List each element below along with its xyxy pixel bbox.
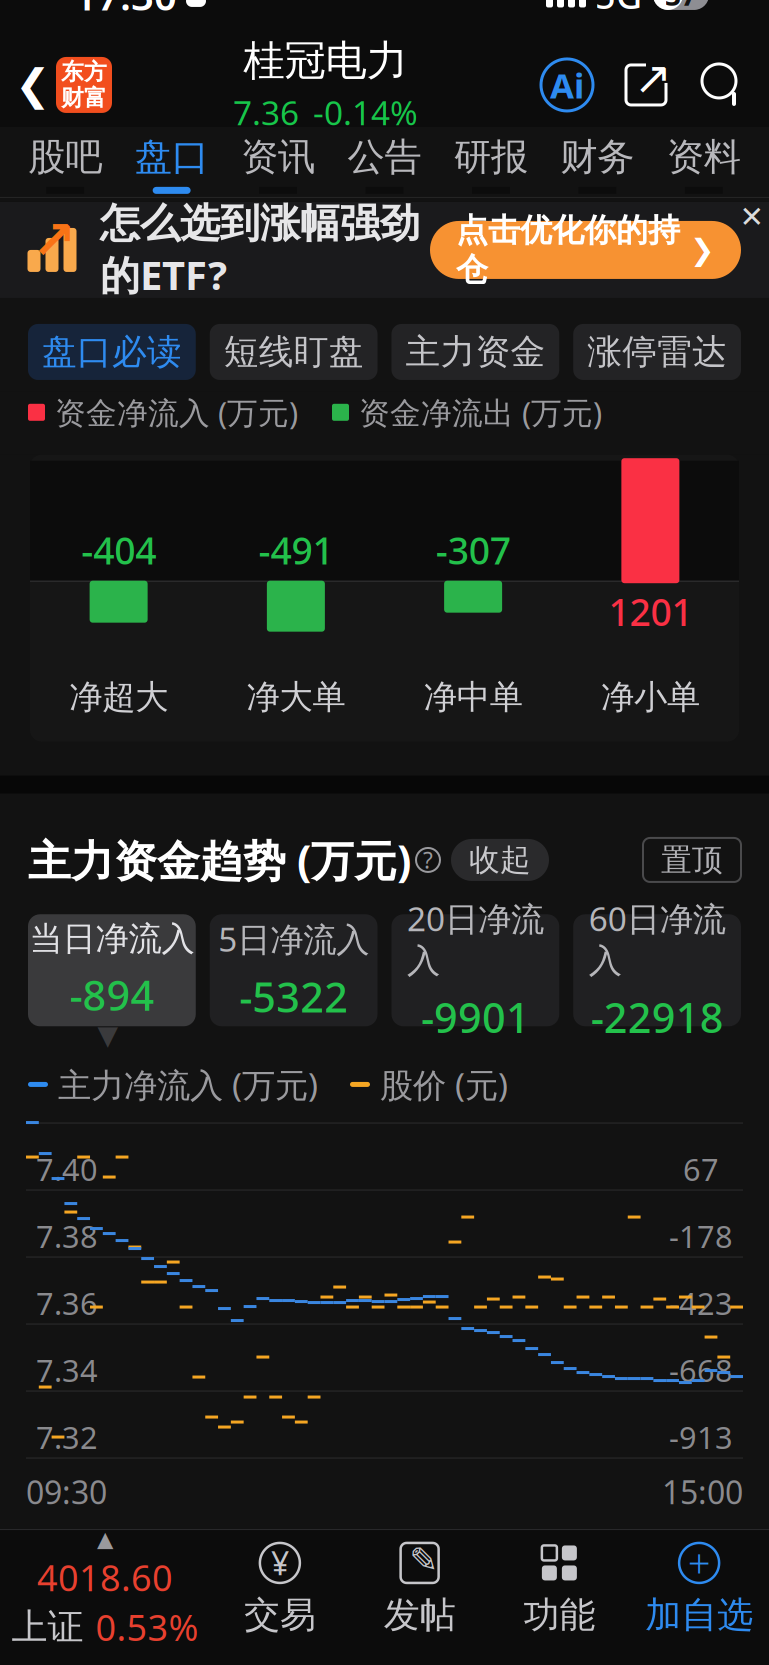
staticText: 财务 <box>560 134 634 180</box>
staticText: -9901 <box>421 989 530 1044</box>
staticText: -178 <box>669 1216 733 1256</box>
button[interactable]: + <box>629 1530 769 1648</box>
staticText: 置顶 <box>661 841 723 879</box>
staticText: ? <box>423 845 433 875</box>
staticText: 点击优化你的持仓 <box>456 211 680 289</box>
staticText: 涨停雷达 <box>587 331 727 373</box>
button[interactable]: 功能 <box>489 1530 629 1648</box>
button[interactable]: 短线盯盘 <box>210 324 378 380</box>
staticText: 5G <box>595 0 642 19</box>
staticText: 净大单 <box>246 677 345 718</box>
staticText: 37 <box>665 0 697 14</box>
staticText: 发帖 <box>384 1593 456 1637</box>
button[interactable]: AI 助手 <box>539 57 595 113</box>
button[interactable]: 返回 <box>10 53 56 117</box>
staticText: 7.32 <box>36 1417 98 1457</box>
button[interactable]: 涨停雷达 <box>573 324 741 380</box>
staticText: 资讯 <box>241 134 315 180</box>
staticText: 7.36 <box>233 90 299 134</box>
staticText: 桂冠电力 <box>243 35 407 86</box>
staticText: 收起 <box>469 841 531 879</box>
staticText: 资金净流入 (万元) <box>55 392 298 433</box>
staticText: 股价 (元) <box>380 1062 508 1107</box>
staticText: 7.38 <box>36 1216 98 1256</box>
button[interactable]: 研报 <box>438 131 544 197</box>
button[interactable]: ¥ <box>210 1530 350 1648</box>
button[interactable]: 5日净流入 <box>210 914 378 1026</box>
staticText: 短线盯盘 <box>224 331 364 373</box>
staticText: -307 <box>436 525 511 575</box>
button[interactable]: 收起 <box>451 839 549 881</box>
staticText: 17:30 <box>74 0 177 21</box>
staticText: 加自选 <box>645 1593 753 1637</box>
staticText: 公告 <box>347 134 421 180</box>
staticText: 5日净流入 <box>218 917 369 961</box>
staticText: + <box>688 1536 711 1589</box>
staticText: 资金净流出 (万元) <box>359 392 602 433</box>
staticText: 15:00 <box>662 1470 743 1513</box>
staticText: Ai <box>550 62 584 108</box>
button[interactable]: 搜索 <box>697 59 747 111</box>
staticText: 功能 <box>523 1593 595 1637</box>
staticText: -5322 <box>239 969 348 1024</box>
button[interactable]: 20日净流入 <box>391 914 559 1026</box>
staticText: 盘口 <box>135 134 209 180</box>
button[interactable]: 说明 <box>411 843 445 877</box>
staticText: 怎么选到涨幅强劲的ETF? <box>100 199 420 301</box>
staticText: 主力净流入 (万元) <box>58 1062 318 1107</box>
staticText: 4018.60 <box>37 1553 173 1601</box>
staticText: -22918 <box>591 989 724 1044</box>
staticText: 09:30 <box>26 1470 107 1513</box>
button[interactable]: 60日净流入 <box>573 914 741 1026</box>
staticText: 主力资金 <box>405 331 545 373</box>
button[interactable]: 资料 <box>651 131 757 197</box>
staticText: 7.34 <box>36 1350 98 1390</box>
staticText: 净小单 <box>601 677 700 718</box>
button[interactable]: 股吧 <box>12 131 118 197</box>
staticText: 盘口必读 <box>42 331 182 373</box>
staticText: -423 <box>669 1283 733 1323</box>
button[interactable]: ↗ <box>0 202 769 298</box>
button[interactable]: 资讯 <box>225 131 331 197</box>
staticText: 资料 <box>667 134 741 180</box>
staticText: 67 <box>683 1149 719 1189</box>
staticText: 20日净流入 <box>407 896 544 981</box>
staticText: 研报 <box>454 134 528 180</box>
button[interactable]: 主力资金 <box>391 324 559 380</box>
staticText: ✎ <box>409 1540 438 1580</box>
staticText: 财富 <box>61 84 107 112</box>
staticText: 60日净流入 <box>589 896 726 981</box>
staticText: ▲ <box>97 1527 113 1551</box>
staticText: -894 <box>69 967 154 1022</box>
staticText: 当日净流入 <box>29 918 194 959</box>
button[interactable]: 当日净流入 <box>28 914 196 1026</box>
button[interactable]: 公告 <box>331 131 438 197</box>
button[interactable]: 盘口必读 <box>28 324 196 380</box>
staticText: 1201 <box>608 587 692 636</box>
staticText: 0.53% <box>95 1603 198 1651</box>
staticText: 7.36 <box>36 1283 98 1323</box>
button[interactable]: 东方财富 <box>56 57 112 113</box>
staticText: ¥ <box>271 1542 289 1584</box>
staticText: ✕ <box>739 200 764 234</box>
staticText: 东方 <box>61 58 107 86</box>
button[interactable]: ✎ <box>350 1530 490 1648</box>
button[interactable]: 财务 <box>544 131 650 197</box>
staticText: -668 <box>669 1350 733 1390</box>
staticText: ❯ <box>690 233 715 267</box>
staticText: ↗ <box>634 52 672 104</box>
staticText: -404 <box>81 525 156 575</box>
staticText: 交易 <box>244 1593 316 1637</box>
staticText: 7.40 <box>36 1149 98 1189</box>
staticText: ↗ <box>31 210 76 270</box>
button[interactable]: ▲ <box>0 1530 210 1648</box>
button[interactable]: 置顶 <box>643 838 741 882</box>
button[interactable]: 盘口 <box>118 131 225 197</box>
staticText: -491 <box>258 525 333 575</box>
staticText: 净中单 <box>424 677 523 718</box>
staticText: 股吧 <box>28 134 102 180</box>
staticText: ▼ <box>97 1020 118 1050</box>
button[interactable]: 分享 <box>621 59 671 111</box>
button[interactable]: 关闭 <box>735 202 769 232</box>
staticText: -913 <box>669 1417 733 1457</box>
